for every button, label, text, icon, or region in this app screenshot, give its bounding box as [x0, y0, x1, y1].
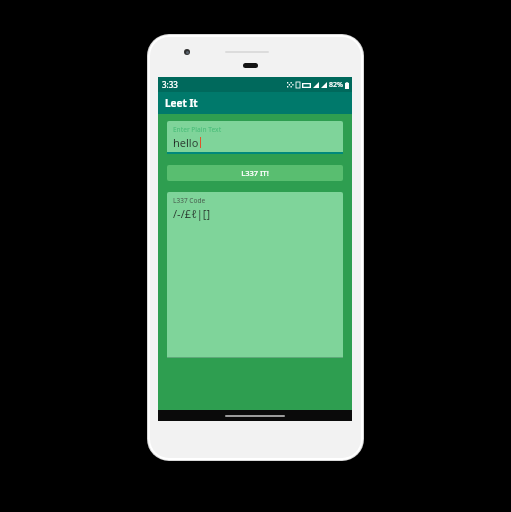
- staticText: 82%: [329, 80, 343, 90]
- staticText: Enter Plain Text: [173, 125, 222, 134]
- staticText: hello: [173, 135, 199, 150]
- button[interactable]: L337 IT!: [167, 165, 343, 181]
- staticText: 3:33: [162, 79, 178, 90]
- other: Home gesture: [225, 415, 285, 417]
- staticText: L337 Code: [173, 196, 206, 205]
- button[interactable]: Enter Plain Text: [167, 121, 343, 154]
- staticText: L337 IT!: [241, 168, 269, 178]
- staticText: Leet It: [165, 96, 198, 110]
- button[interactable]: L337 Code: [167, 192, 343, 358]
- staticText: /-/£ℓ|[]: [173, 206, 211, 221]
